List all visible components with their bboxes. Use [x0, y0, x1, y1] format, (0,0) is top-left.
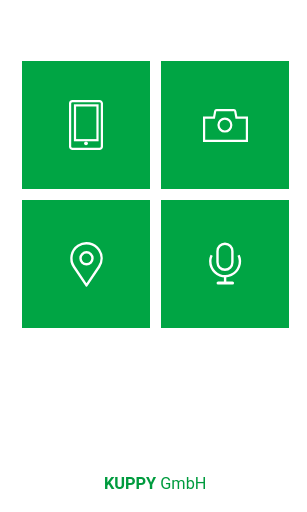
button[interactable]: Microphone: [161, 200, 289, 328]
button[interactable]: Phone: [22, 61, 150, 189]
button[interactable]: Camera: [161, 61, 289, 189]
staticText: KUPPY GmbH: [104, 474, 207, 493]
button[interactable]: Location: [22, 200, 150, 328]
